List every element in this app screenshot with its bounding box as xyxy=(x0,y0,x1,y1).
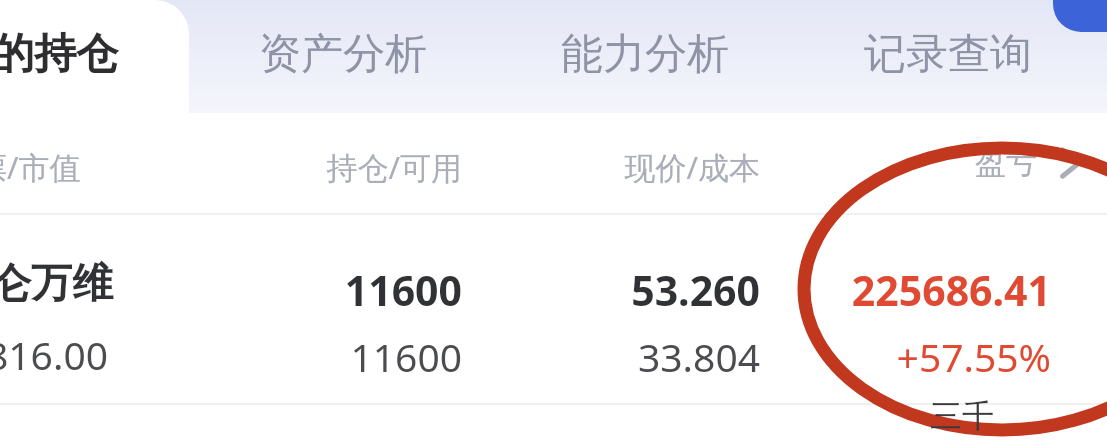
button[interactable]: 资产分析 xyxy=(233,0,453,113)
staticText: +57.55% xyxy=(0,330,1051,383)
staticText: 持仓/可用 xyxy=(0,146,462,188)
other: 展开盈亏 xyxy=(1053,146,1087,180)
button[interactable]: 盈亏 xyxy=(975,143,1087,182)
staticText: 225686.41 xyxy=(0,262,1051,318)
staticText: 盈亏 xyxy=(975,143,1037,182)
button[interactable]: 仑万维 xyxy=(0,215,1107,405)
staticText: 三千 xyxy=(930,396,994,436)
staticText: 11600 xyxy=(0,262,462,318)
button[interactable]: 的持仓 xyxy=(0,0,189,113)
staticText: 票/市值 xyxy=(0,146,81,188)
staticText: 53.260 xyxy=(0,262,760,318)
button[interactable]: 能力分析 xyxy=(535,0,755,113)
staticText: 仑万维 xyxy=(0,258,113,310)
staticText: 11600 xyxy=(0,330,462,383)
staticText: 的持仓 xyxy=(0,28,118,81)
staticText: 33.804 xyxy=(0,330,760,383)
button[interactable]: 记录查询 xyxy=(838,0,1058,113)
staticText: 能力分析 xyxy=(561,28,729,81)
staticText: 资产分析 xyxy=(259,28,427,81)
staticText: 记录查询 xyxy=(864,28,1032,81)
staticText: 现价/成本 xyxy=(0,146,760,188)
staticText: 816.00 xyxy=(0,328,108,381)
